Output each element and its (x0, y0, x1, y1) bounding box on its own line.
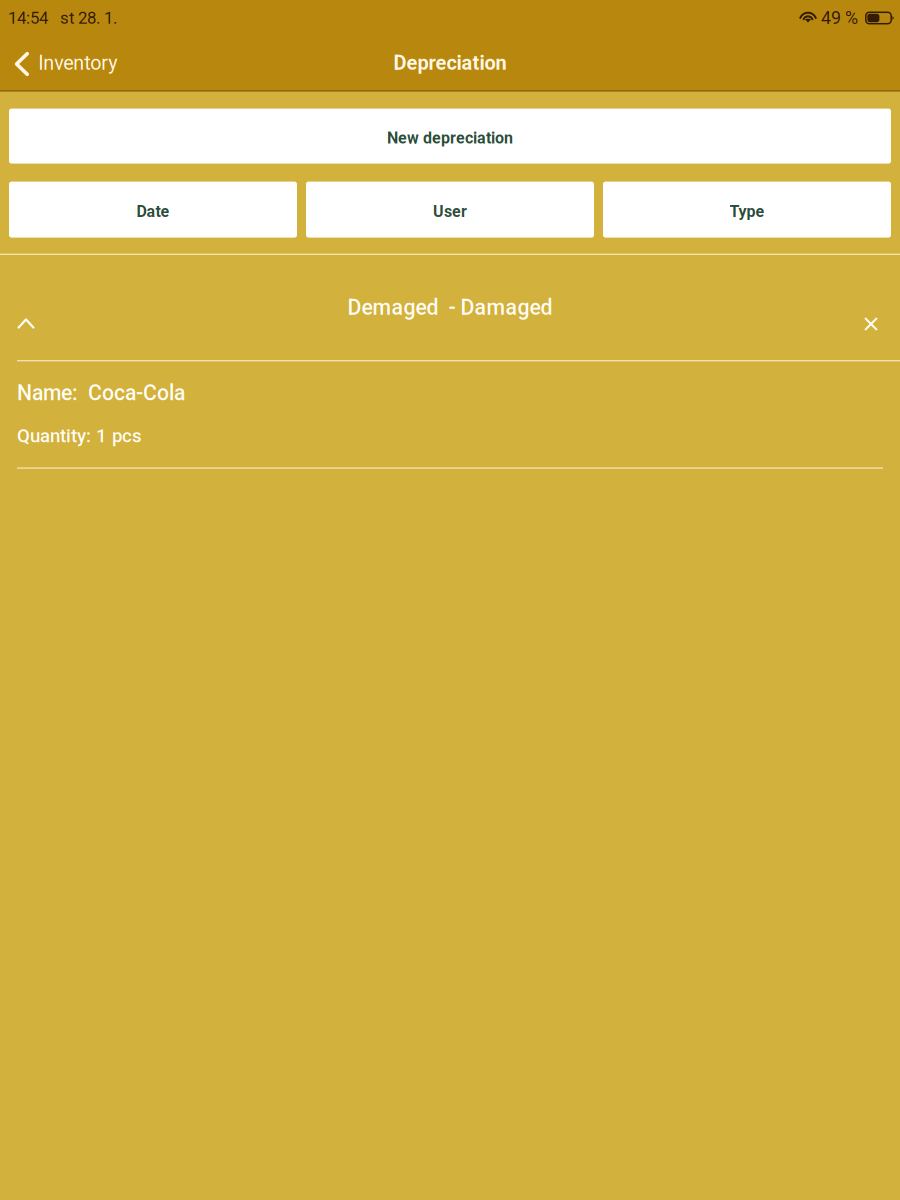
staticText: 49 % (821, 7, 858, 28)
staticText: Inventory (38, 51, 117, 74)
staticText: New depreciation (387, 129, 513, 147)
staticText: Quantity: 1 pcs (17, 425, 142, 447)
staticText: Name: Coca-Cola (17, 380, 185, 405)
button[interactable]: Demaged - Damaged (290, 277, 610, 337)
button[interactable]: Close (840, 293, 900, 353)
button[interactable]: New depreciation (9, 109, 891, 164)
staticText: Demaged - Damaged (347, 295, 552, 320)
staticText: Depreciation (393, 51, 506, 75)
staticText: User (433, 202, 467, 221)
staticText: Date (136, 202, 169, 221)
button[interactable]: Date (9, 182, 297, 238)
staticText: st 28. 1. (60, 8, 117, 28)
button[interactable]: Inventory (0, 36, 128, 90)
staticText: 14:54 (8, 8, 48, 28)
button[interactable]: Collapse section (0, 293, 52, 353)
button[interactable]: User (306, 182, 594, 238)
button[interactable]: Type (603, 182, 891, 238)
staticText: Type (729, 202, 764, 221)
